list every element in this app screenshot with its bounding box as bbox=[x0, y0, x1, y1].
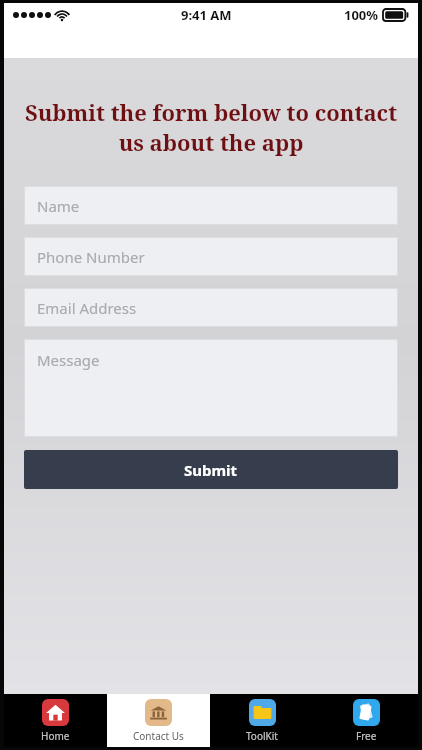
button[interactable]: ToolKit bbox=[210, 694, 314, 747]
button[interactable]: Home bbox=[4, 694, 107, 747]
staticText: Submit the form below to contact us abou… bbox=[13, 97, 409, 158]
staticText: Phone Number bbox=[37, 247, 145, 267]
staticText: Email Address bbox=[37, 298, 137, 318]
button[interactable]: Contact Us bbox=[107, 694, 210, 747]
staticText: ToolKit bbox=[246, 729, 278, 743]
button[interactable]: Phone Number bbox=[24, 237, 398, 276]
button[interactable]: Free bbox=[314, 694, 418, 747]
staticText: Name bbox=[37, 196, 80, 216]
staticText: Contact Us bbox=[133, 729, 184, 743]
staticText: 100% bbox=[344, 6, 379, 24]
staticText: Free bbox=[356, 729, 377, 743]
button[interactable]: Submit bbox=[24, 450, 398, 489]
button[interactable]: Email Address bbox=[24, 288, 398, 327]
staticText: Submit bbox=[184, 460, 238, 480]
staticText: Home bbox=[41, 729, 70, 743]
button[interactable]: Name bbox=[24, 186, 398, 225]
button[interactable]: Message bbox=[24, 339, 398, 437]
staticText: 9:41 AM bbox=[181, 6, 232, 24]
staticText: Message bbox=[37, 350, 100, 370]
